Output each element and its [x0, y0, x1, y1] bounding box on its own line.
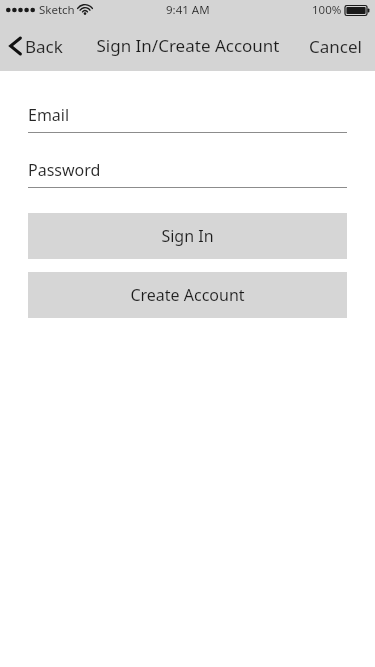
button[interactable]: Back — [0, 24, 73, 68]
staticText: Password — [28, 159, 101, 181]
staticText: Email — [28, 104, 70, 126]
button[interactable]: Sign In — [28, 213, 347, 259]
button[interactable]: Email — [28, 104, 347, 133]
staticText: 9:41 AM — [166, 2, 210, 18]
staticText: 100% — [312, 2, 342, 18]
staticText: Cancel — [309, 35, 362, 58]
staticText: Back — [25, 35, 63, 58]
staticText: Sign In/Create Account — [96, 34, 280, 57]
button[interactable]: Cancel — [296, 24, 375, 68]
button[interactable]: Create Account — [28, 272, 347, 318]
staticText: Create Account — [130, 284, 245, 306]
staticText: Sketch — [39, 2, 75, 18]
staticText: Sign In — [161, 225, 214, 247]
button[interactable]: Password — [28, 159, 347, 188]
